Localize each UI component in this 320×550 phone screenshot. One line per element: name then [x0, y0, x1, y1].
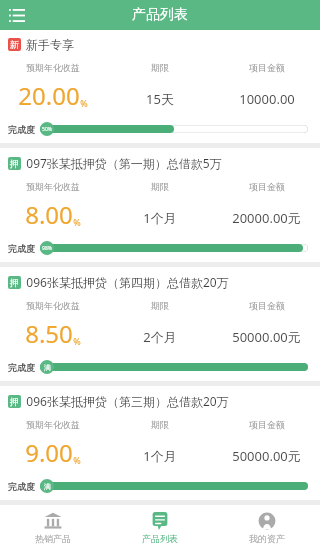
button[interactable]: 产品列表 [106, 505, 213, 550]
staticText: 10000.00 [239, 90, 295, 108]
staticText: 完成度 [8, 481, 35, 492]
staticText: 期限 [151, 419, 169, 430]
staticText: 20.00 [18, 79, 80, 112]
staticText: 新手专享 [26, 37, 74, 52]
staticText: 8.00 [25, 198, 73, 231]
staticText: 096张某抵押贷（第三期）总借款20万 [26, 393, 229, 409]
staticText: 096张某抵押贷（第四期）总借款20万 [26, 274, 229, 290]
staticText: 期限 [151, 181, 169, 192]
staticText: 预期年化收益 [26, 419, 80, 430]
staticText: 50% [42, 126, 52, 133]
staticText: 押 [10, 396, 19, 407]
staticText: 项目金额 [249, 300, 285, 311]
button[interactable]: 押 [0, 148, 320, 262]
staticText: 预期年化收益 [26, 181, 80, 192]
staticText: 预期年化收益 [26, 62, 80, 73]
button[interactable]: 我的资产 [213, 505, 320, 550]
staticText: 期限 [151, 62, 169, 73]
button[interactable]: Menu [0, 0, 34, 30]
staticText: % [73, 335, 81, 347]
staticText: % [80, 97, 88, 109]
staticText: 50000.00元 [232, 328, 301, 346]
staticText: 预期年化收益 [26, 300, 80, 311]
staticText: % [73, 454, 81, 466]
staticText: 满 [44, 363, 51, 372]
button[interactable]: 押 [0, 267, 320, 381]
staticText: 期限 [151, 300, 169, 311]
staticText: 项目金额 [249, 419, 285, 430]
button[interactable]: 押 [0, 386, 320, 500]
staticText: 2个月 [143, 328, 177, 346]
staticText: 我的资产 [249, 533, 285, 544]
staticText: 1个月 [143, 447, 177, 465]
staticText: 产品列表 [142, 533, 178, 544]
button[interactable]: 热销产品 [0, 505, 106, 550]
button[interactable]: 新 [0, 30, 320, 143]
staticText: 097张某抵押贷（第一期）总借款5万 [26, 155, 222, 171]
staticText: % [73, 216, 81, 228]
staticText: 热销产品 [35, 533, 71, 544]
staticText: 完成度 [8, 243, 35, 254]
staticText: 新 [10, 39, 19, 50]
staticText: 项目金额 [249, 181, 285, 192]
staticText: 8.50 [25, 317, 73, 350]
staticText: 1个月 [143, 209, 177, 227]
staticText: 押 [10, 158, 19, 169]
staticText: 9.00 [25, 436, 73, 469]
staticText: 完成度 [8, 124, 35, 135]
staticText: 押 [10, 277, 19, 288]
staticText: 50000.00元 [232, 447, 301, 465]
staticText: 项目金额 [249, 62, 285, 73]
staticText: 98% [42, 245, 52, 252]
staticText: 20000.00元 [232, 209, 301, 227]
staticText: 满 [44, 482, 51, 491]
staticText: 15天 [146, 90, 174, 108]
staticText: 产品列表 [132, 6, 188, 24]
staticText: 完成度 [8, 362, 35, 373]
